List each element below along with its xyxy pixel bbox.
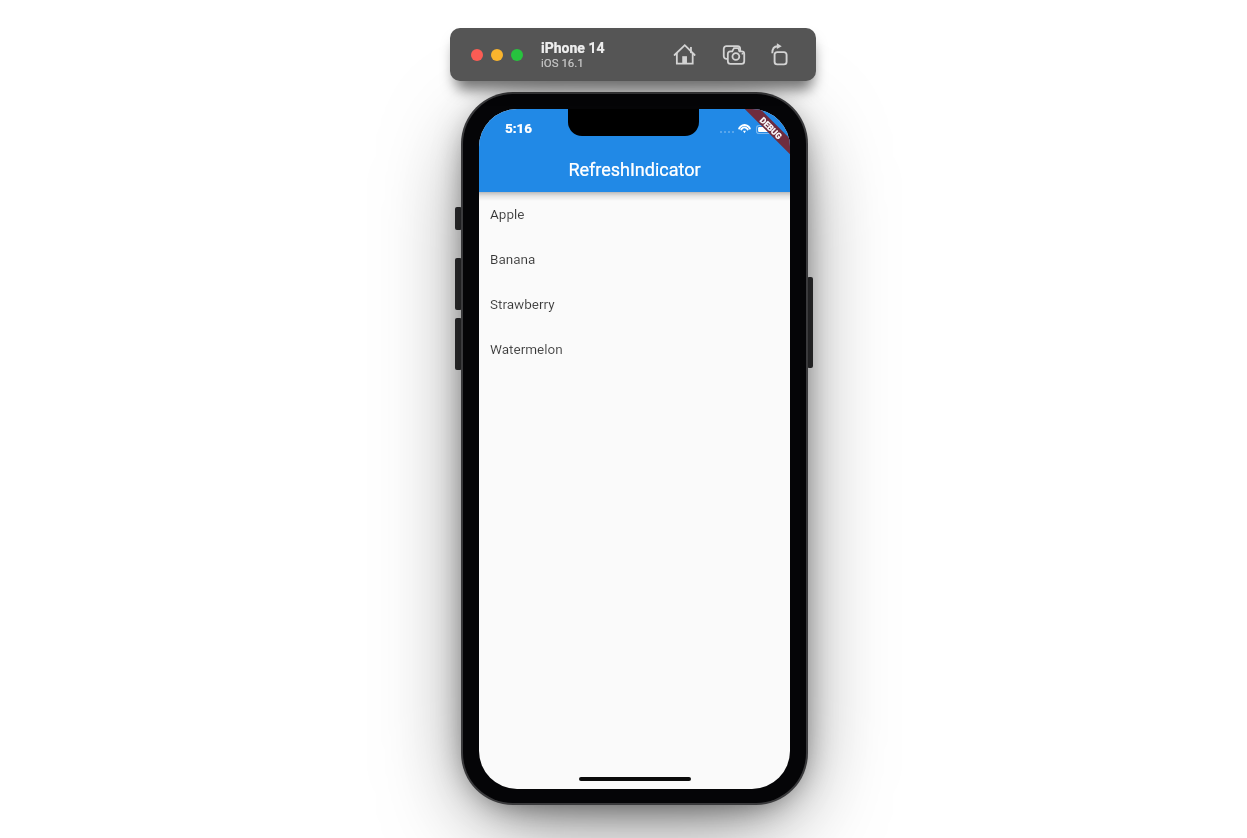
button[interactable]: Screenshot xyxy=(723,43,745,65)
staticText: iPhone 14 xyxy=(541,40,605,56)
staticText: 5:16 xyxy=(505,120,533,136)
button[interactable]: Watermelon xyxy=(479,326,790,371)
button[interactable]: Apple xyxy=(479,191,790,236)
staticText: Strawberry xyxy=(490,296,555,312)
staticText: DEBUG xyxy=(758,115,784,141)
staticText: Apple xyxy=(490,206,525,222)
button[interactable]: Home xyxy=(673,43,695,65)
button[interactable]: Close xyxy=(471,49,483,61)
staticText: iOS 16.1 xyxy=(541,56,584,69)
button[interactable]: Minimize xyxy=(491,49,503,61)
staticText: RefreshIndicator xyxy=(479,159,790,180)
staticText: Watermelon xyxy=(490,341,563,357)
button[interactable]: Strawberry xyxy=(479,281,790,326)
button[interactable]: Banana xyxy=(479,236,790,281)
button[interactable]: Rotate xyxy=(767,43,789,65)
staticText: Banana xyxy=(490,251,536,267)
button[interactable]: Zoom xyxy=(511,49,523,61)
